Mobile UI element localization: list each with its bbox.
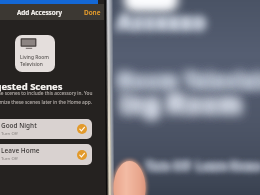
staticText: Add Accessory bbox=[17, 8, 62, 17]
staticText: Done bbox=[84, 8, 101, 17]
button[interactable]: Good Night bbox=[0, 119, 92, 139]
staticText: Leave Home bbox=[1, 146, 40, 155]
staticText: Choose the scenes to include this access… bbox=[0, 90, 93, 97]
staticText: Television bbox=[20, 61, 43, 68]
staticText: Suggested Scenes bbox=[0, 80, 63, 93]
staticText: Turn Off bbox=[1, 155, 18, 161]
staticText: Living Room bbox=[20, 54, 49, 61]
button[interactable]: Living Room bbox=[15, 35, 55, 72]
staticText: can customize these scenes later in the … bbox=[0, 99, 92, 106]
staticText: Good Night bbox=[1, 121, 37, 130]
other: Selected bbox=[77, 150, 87, 160]
button[interactable]: Done bbox=[80, 7, 105, 18]
button[interactable]: Leave Home bbox=[0, 144, 92, 165]
staticText: Turn Off bbox=[1, 130, 18, 136]
other: Selected bbox=[77, 124, 87, 134]
